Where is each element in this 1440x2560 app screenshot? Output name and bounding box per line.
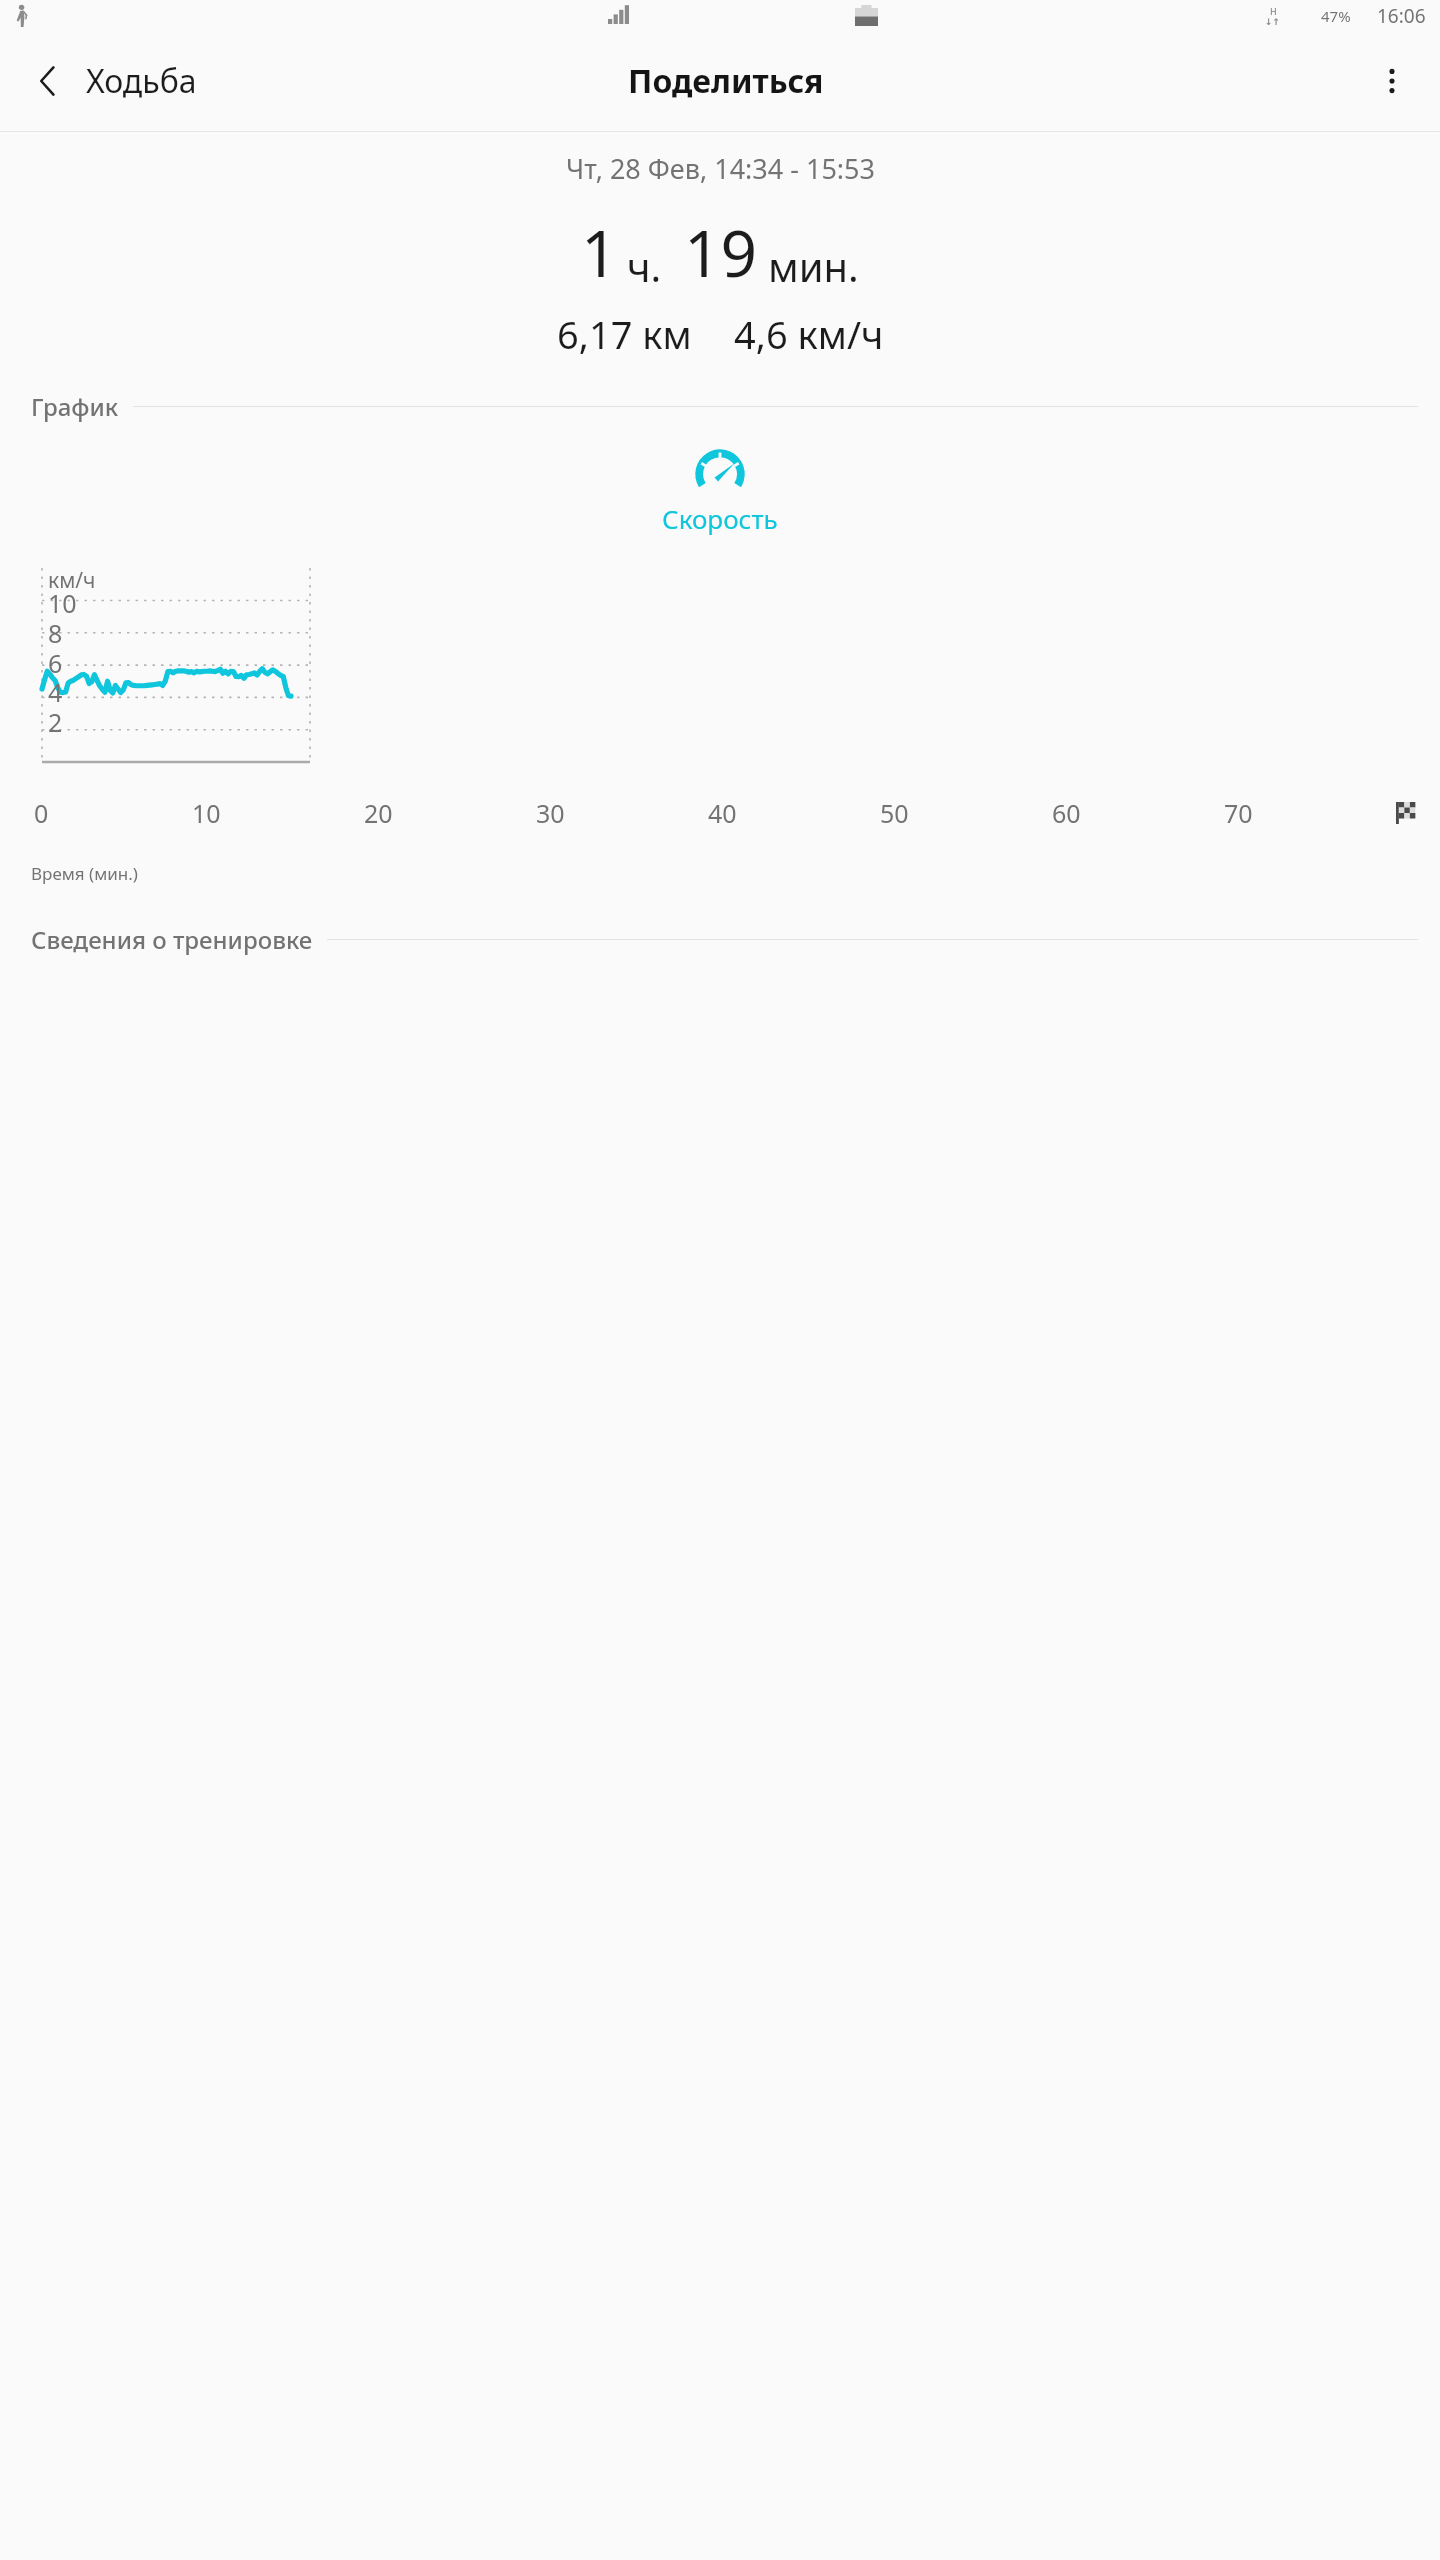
button[interactable]: More options: [1356, 45, 1428, 117]
staticText: 2: [48, 705, 63, 739]
staticText: 50: [880, 796, 909, 830]
staticText: мин.: [768, 239, 859, 293]
staticText: 47%: [1321, 6, 1351, 26]
button[interactable]: Back: [10, 43, 86, 119]
staticText: 20: [364, 796, 393, 830]
staticText: 4,6 км/ч: [734, 308, 884, 360]
staticText: ↓↑: [1265, 17, 1281, 27]
staticText: 10: [48, 586, 77, 620]
staticText: ч.: [627, 239, 662, 293]
staticText: 6: [48, 646, 63, 680]
staticText: Ходьба: [86, 59, 197, 103]
staticText: 8: [48, 616, 63, 650]
staticText: 16:06: [1377, 3, 1426, 29]
staticText: 6,17 км: [557, 308, 692, 360]
staticText: 70: [1224, 796, 1253, 830]
button[interactable]: Скорость: [0, 445, 1440, 536]
staticText: Сведения о тренировке: [31, 923, 313, 956]
staticText: км/ч: [48, 566, 96, 595]
staticText: 40: [708, 796, 737, 830]
staticText: Поделиться: [628, 59, 824, 103]
staticText: 4: [48, 675, 63, 709]
staticText: 60: [1052, 796, 1081, 830]
staticText: График: [31, 390, 119, 423]
button[interactable]: Поделиться: [616, 49, 836, 113]
staticText: H: [1270, 5, 1277, 17]
staticText: 10: [192, 796, 221, 830]
staticText: 0: [34, 796, 49, 830]
staticText: 30: [536, 796, 565, 830]
staticText: 1: [581, 209, 618, 296]
staticText: Время (мин.): [31, 862, 138, 885]
staticText: 19: [684, 209, 758, 296]
staticText: Скорость: [662, 501, 778, 536]
staticText: Чт, 28 Фев, 14:34 - 15:53: [566, 150, 875, 187]
